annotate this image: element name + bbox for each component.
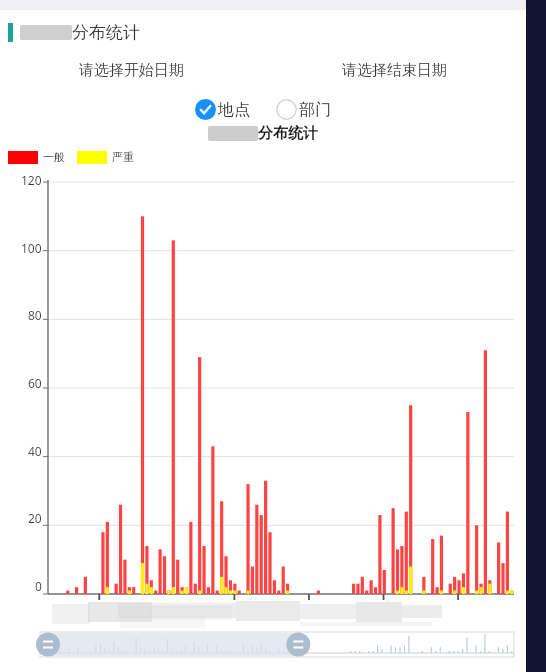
staticText: 部门: [299, 100, 331, 120]
button[interactable]: 请选择开始日期: [0, 57, 263, 84]
staticText: 地点: [218, 100, 250, 120]
staticText: 请选择结束日期: [342, 61, 447, 80]
button[interactable]: 部门: [274, 97, 333, 122]
staticText: 40: [28, 443, 42, 459]
other: 部门: [276, 99, 297, 120]
staticText: 60: [28, 375, 42, 391]
staticText: 分布统计: [258, 124, 318, 143]
staticText: 请选择开始日期: [79, 61, 184, 80]
staticText: 20: [28, 510, 42, 526]
staticText: 一般: [43, 150, 65, 164]
staticText: 分布统计: [72, 22, 140, 43]
staticText: 严重: [112, 150, 134, 164]
staticText: 80: [28, 307, 42, 323]
button[interactable]: 地点 selected: [193, 97, 252, 122]
staticText: 100: [21, 240, 42, 256]
other: 地点 selected: [195, 99, 216, 120]
staticText: 0: [35, 578, 42, 594]
button[interactable]: 请选择结束日期: [263, 57, 526, 84]
staticText: 120: [21, 172, 42, 188]
button[interactable]: 一般: [8, 150, 526, 164]
